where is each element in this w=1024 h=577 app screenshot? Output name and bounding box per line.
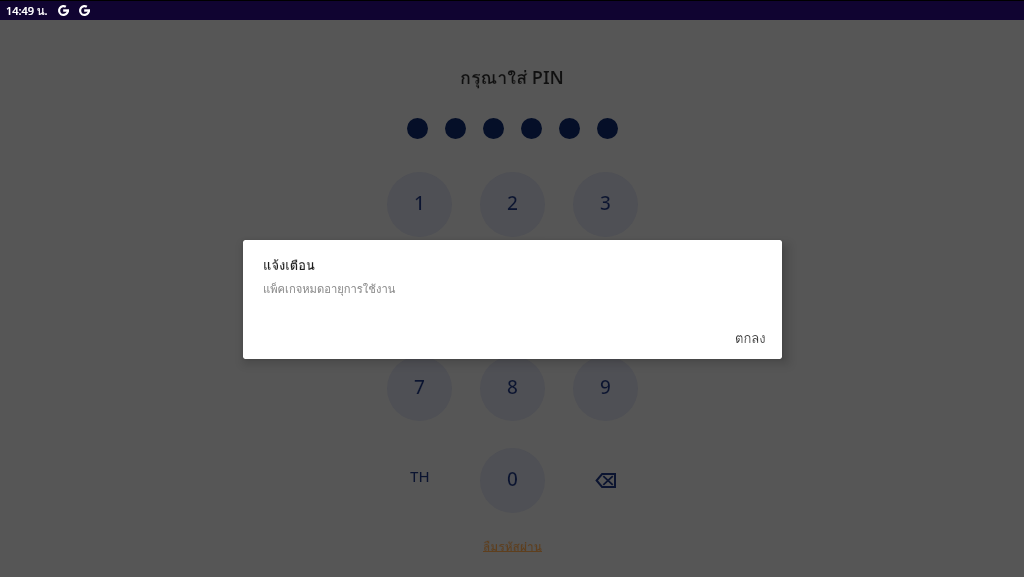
staticText: 7 (414, 374, 425, 400)
staticText: 1 (414, 190, 425, 216)
button[interactable]: 2 (480, 172, 545, 237)
button[interactable]: TH (387, 448, 452, 513)
staticText: 0 (507, 466, 518, 492)
staticText: แพ็คเกจหมดอายุการใช้งาน (263, 280, 396, 298)
staticText: แจ้งเตือน (263, 255, 315, 276)
staticText: กรุณาใส่ PIN (460, 63, 564, 92)
staticText: 9 (600, 374, 611, 400)
staticText: ลืมรหัสผ่าน (483, 537, 542, 556)
button[interactable]: 8 (480, 356, 545, 421)
button[interactable]: 9 (573, 356, 638, 421)
staticText: 3 (600, 190, 611, 216)
other: Google (79, 5, 90, 16)
button[interactable]: 4 (387, 264, 452, 329)
staticText: 14:49 น. (6, 2, 48, 19)
button[interactable]: ลืมรหัสผ่าน (477, 534, 548, 560)
button[interactable]: 7 (387, 356, 452, 421)
button[interactable]: 3 (573, 172, 638, 237)
staticText: TH (410, 466, 430, 486)
button[interactable]: ตกลง (725, 320, 776, 357)
staticText: 2 (507, 190, 518, 216)
button[interactable]: 1 (387, 172, 452, 237)
button[interactable]: Backspace (573, 448, 638, 513)
staticText: ตกลง (735, 328, 766, 349)
staticText: 8 (507, 374, 518, 400)
other: Google (58, 5, 69, 16)
button[interactable]: 0 (480, 448, 545, 513)
